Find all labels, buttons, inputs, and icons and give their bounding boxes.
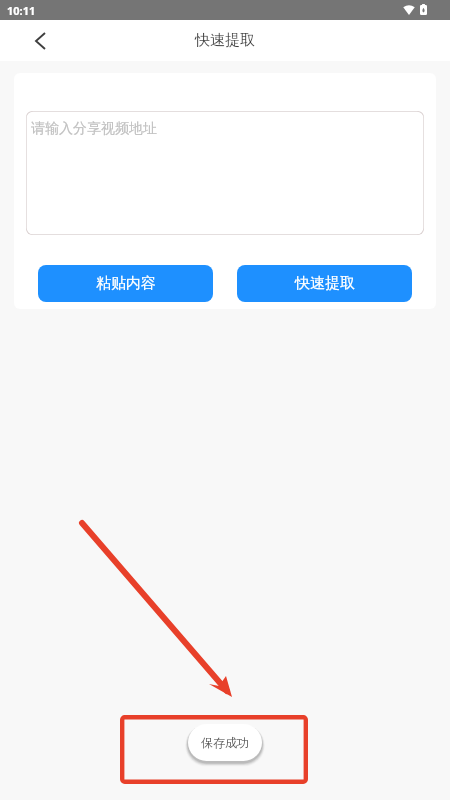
staticText: 快速提取	[295, 274, 355, 293]
button[interactable]: 快速提取	[237, 265, 412, 302]
staticText: 请输入分享视频地址	[31, 120, 157, 138]
button[interactable]: 请输入分享视频地址	[26, 111, 424, 235]
button[interactable]: Back	[26, 27, 54, 55]
button[interactable]: 粘贴内容	[38, 265, 213, 302]
staticText: 保存成功	[201, 735, 249, 750]
staticText: 粘贴内容	[96, 274, 156, 293]
staticText: 快速提取	[195, 31, 255, 50]
staticText: 10:11	[7, 3, 36, 18]
